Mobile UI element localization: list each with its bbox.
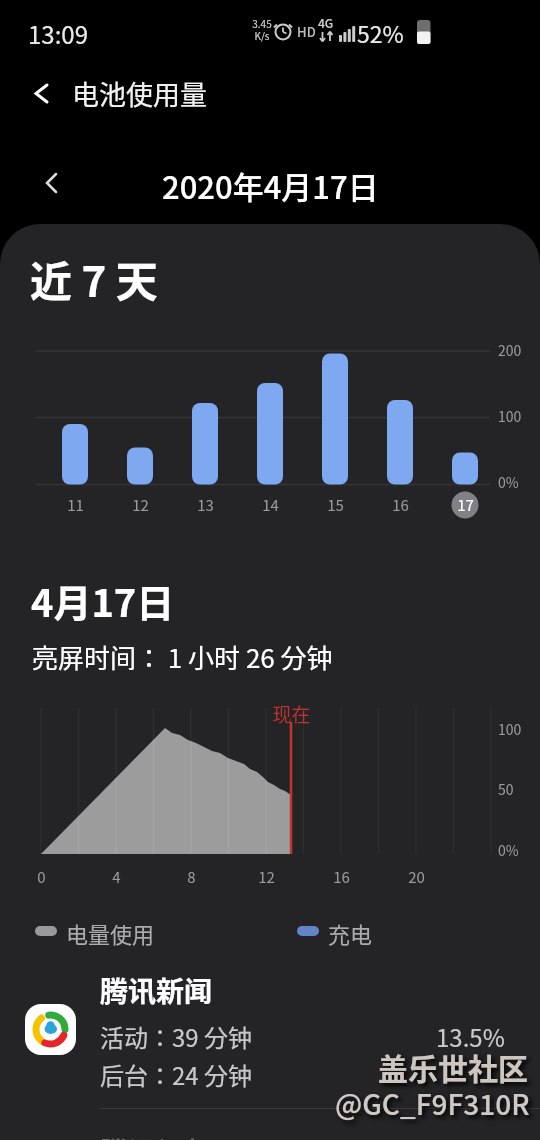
staticText: 13: [197, 494, 214, 516]
staticText: 100: [498, 406, 522, 426]
button[interactable]: 腾讯新闻: [0, 965, 540, 1105]
staticText: 3.45 K/s: [252, 16, 272, 42]
staticText: 50: [498, 779, 514, 799]
staticText: 16: [333, 866, 350, 888]
staticText: 4G: [318, 14, 334, 31]
staticText: 11: [67, 494, 84, 516]
staticText: 电池使用量: [72, 74, 207, 113]
staticText: 17: [457, 494, 474, 516]
staticText: 近 7 天: [30, 248, 158, 309]
staticText: 100: [498, 719, 522, 739]
staticText: 2020年4月17日: [162, 163, 379, 208]
staticText: 0: [37, 866, 46, 888]
staticText: @GC_F9F310R: [335, 1083, 530, 1124]
staticText: 现在: [272, 700, 311, 728]
staticText: 0%: [498, 840, 519, 860]
button[interactable]: 电池使用量: [0, 70, 540, 126]
staticText: 亮屏时间： 1 小时 26 分钟: [32, 638, 333, 676]
staticText: 13:09: [28, 16, 88, 51]
staticText: HD: [297, 22, 316, 41]
staticText: 12: [132, 494, 149, 516]
staticText: 盖乐世社区: [378, 1045, 528, 1088]
staticText: 电量使用: [66, 917, 155, 949]
staticText: 200: [498, 340, 522, 360]
staticText: 腾讯视频: [100, 1131, 213, 1140]
staticText: 16: [392, 494, 409, 516]
staticText: 13.5%: [436, 1019, 505, 1054]
staticText: 充电: [328, 917, 373, 949]
staticText: 0%: [498, 472, 519, 492]
staticText: 4: [112, 866, 121, 888]
staticText: 14: [262, 494, 279, 516]
staticText: 8: [187, 866, 196, 888]
button[interactable]: 2020年4月17日: [0, 155, 540, 215]
staticText: 活动：39 分钟: [100, 1019, 253, 1054]
staticText: 52%: [357, 16, 404, 49]
staticText: 4月17日: [31, 573, 175, 628]
staticText: 腾讯新闻: [100, 970, 213, 1011]
staticText: 15: [327, 494, 344, 516]
staticText: 12: [258, 866, 275, 888]
staticText: 后台：24 分钟: [100, 1057, 253, 1092]
staticText: 20: [408, 866, 425, 888]
